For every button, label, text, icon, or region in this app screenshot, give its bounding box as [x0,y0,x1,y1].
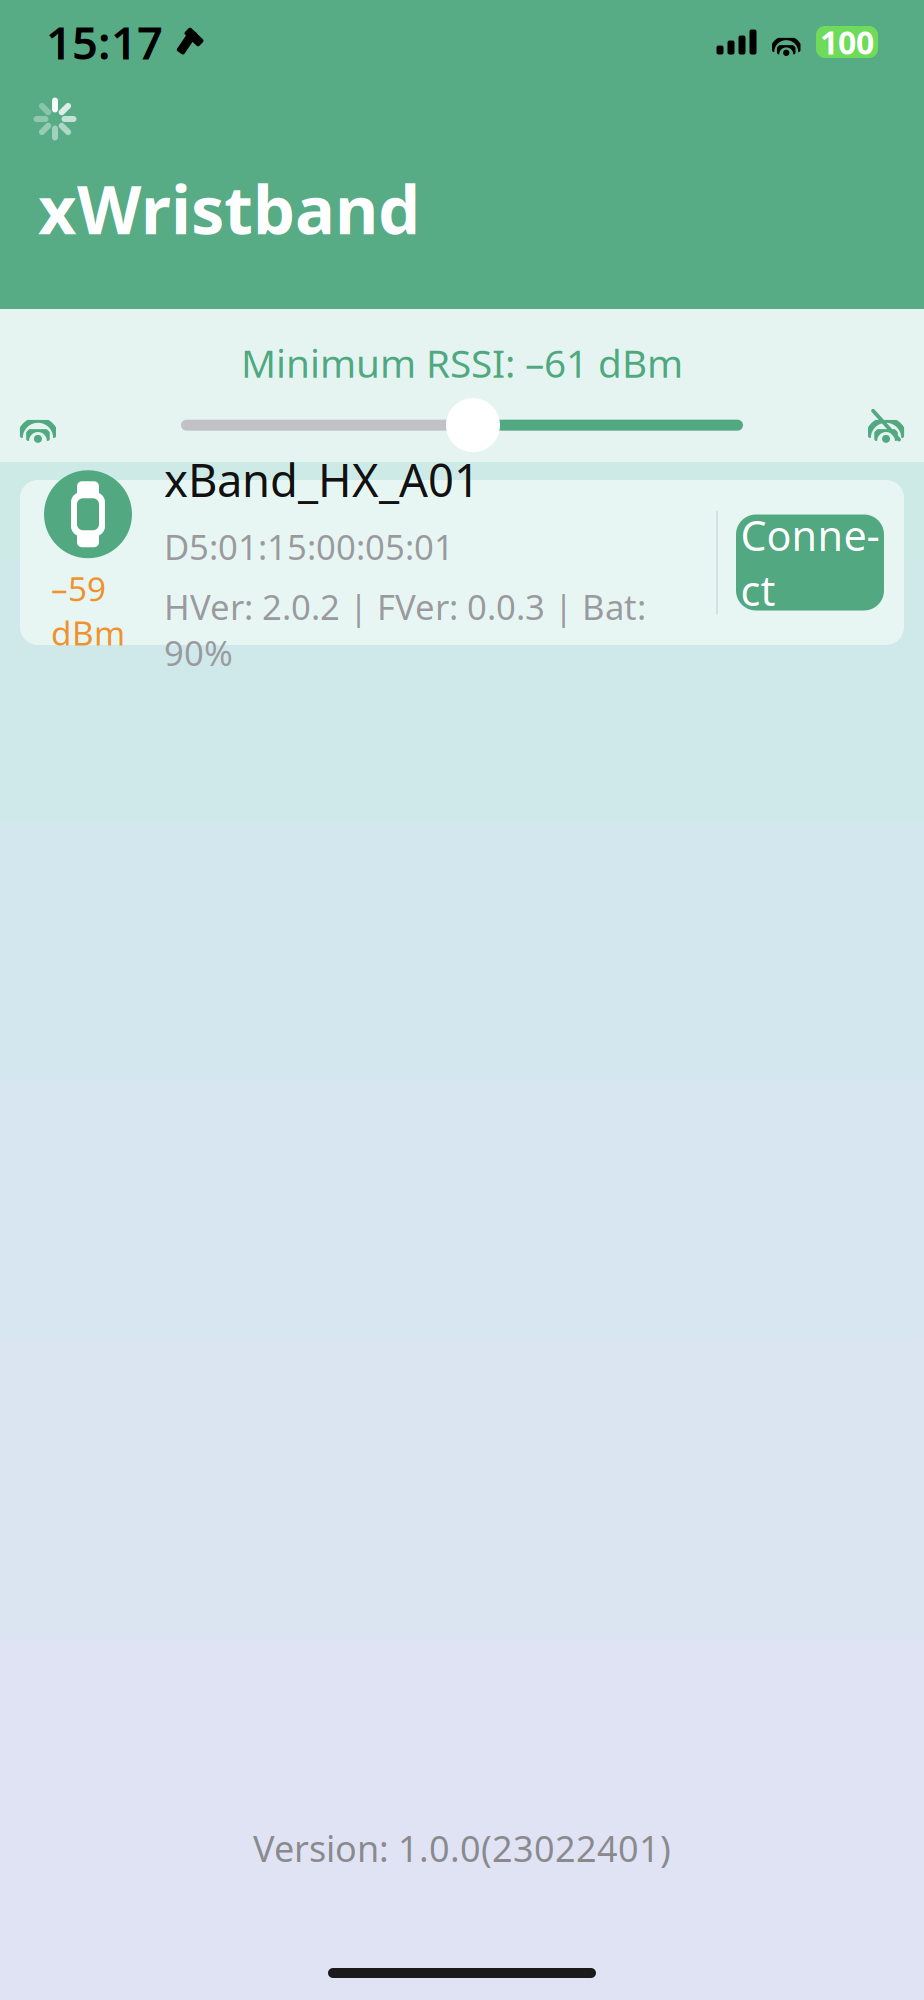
staticText: HVer: 2.0.2 | FVer: 0.0.3 | Bat: 90% [164,584,646,676]
button[interactable]: –59 dBm [20,480,904,645]
staticText: Version: 1.0.0(23022401) [253,1824,671,1872]
staticText: xWristband [38,164,420,252]
staticText: Minimum RSSI: –61 dBm [241,337,683,388]
staticText: –59 dBm [51,566,125,655]
staticText: 15:17 [46,12,163,72]
staticText: Connect [740,508,879,617]
staticText: xBand_HX_A01 [164,449,480,509]
button[interactable]: Connect [736,514,884,610]
staticText: D5:01:15:00:05:01 [164,523,454,569]
staticText: 100 [820,21,874,63]
